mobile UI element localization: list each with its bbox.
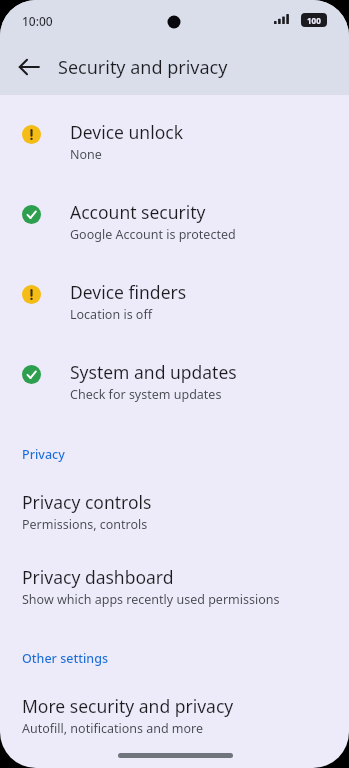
button[interactable]: More security and privacy [0,667,349,737]
staticText: Account security [70,200,206,224]
staticText: 100 [307,15,321,26]
button[interactable]: Privacy dashboard [0,533,349,608]
staticText: More security and privacy [22,694,234,718]
staticText: Check for system updates [70,386,222,403]
staticText: Device finders [70,280,187,304]
staticText: Privacy dashboard [22,565,174,589]
staticText: Privacy [22,446,65,463]
staticText: Autofill, notifications and more [22,720,204,737]
staticText: Location is off [70,306,153,323]
button[interactable]: Privacy controls [0,463,349,533]
button[interactable]: Device finders [0,243,349,323]
staticText: 10:00 [22,13,53,29]
staticText: None [70,146,102,163]
staticText: Security and privacy [58,55,228,80]
staticText: Device unlock [70,120,183,144]
staticText: Permissions, controls [22,516,148,533]
button[interactable]: System and updates [0,323,349,403]
staticText: Other settings [22,650,109,667]
staticText: System and updates [70,360,237,384]
staticText: Privacy controls [22,490,152,514]
staticText: Google Account is protected [70,226,236,243]
staticText: Show which apps recently used permission… [22,591,280,608]
button[interactable]: Back [4,42,54,92]
button[interactable]: Device unlock [0,95,349,163]
button[interactable]: Account security [0,163,349,243]
